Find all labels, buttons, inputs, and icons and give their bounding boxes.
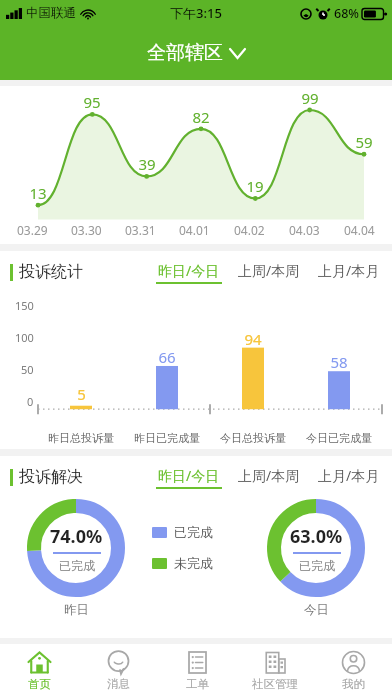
staticText: 全部辖区 (147, 41, 223, 65)
button[interactable]: 社区管理 (236, 644, 314, 696)
staticText: 150 (15, 298, 34, 313)
staticText: 中国联通 (26, 5, 76, 21)
button[interactable]: 昨日/今日 (156, 261, 222, 284)
staticText: 39 (138, 154, 156, 174)
staticText: 下午3:15 (170, 4, 222, 22)
staticText: 今日总投诉量 (220, 431, 286, 445)
staticText: 昨日/今日 (158, 466, 220, 485)
staticText: 95 (83, 92, 101, 112)
staticText: 59 (355, 132, 373, 152)
staticText: 0 (27, 394, 34, 409)
staticText: 今日已完成量 (306, 431, 372, 445)
staticText: 74.0% (50, 524, 103, 549)
staticText: 未完成 (174, 555, 213, 571)
staticText: 已完成 (59, 558, 95, 573)
staticText: 昨日 (64, 602, 89, 618)
staticText: 投诉解决 (19, 467, 83, 487)
staticText: 投诉统计 (19, 262, 83, 282)
staticText: 昨日总投诉量 (48, 431, 114, 445)
staticText: 03.30 (71, 222, 102, 238)
staticText: 上月/本月 (318, 466, 380, 485)
staticText: 已完成 (299, 558, 335, 573)
staticText: 04.04 (344, 222, 375, 238)
staticText: 上周/本周 (238, 466, 300, 485)
button[interactable]: 首页 (0, 644, 79, 696)
staticText: 03.29 (17, 222, 48, 238)
staticText: 94 (244, 329, 262, 349)
staticText: 首页 (28, 677, 51, 691)
button[interactable]: 全部辖区 (0, 26, 392, 80)
staticText: 66 (158, 347, 176, 367)
button[interactable]: 上周/本周 (236, 261, 302, 284)
staticText: 04.02 (234, 222, 265, 238)
staticText: 消息 (107, 677, 130, 691)
staticText: 82 (192, 107, 210, 127)
staticText: 已完成 (174, 524, 213, 540)
staticText: 13 (29, 183, 47, 203)
staticText: 上周/本周 (238, 261, 300, 280)
staticText: 04.01 (179, 222, 210, 238)
staticText: 昨日/今日 (158, 261, 220, 280)
staticText: 工单 (186, 677, 209, 691)
button[interactable]: 上月/本月 (316, 261, 382, 284)
button[interactable]: 上月/本月 (316, 466, 382, 489)
button[interactable]: 我的 (314, 644, 392, 696)
staticText: 上月/本月 (318, 261, 380, 280)
staticText: 5 (77, 384, 86, 404)
staticText: 社区管理 (252, 677, 298, 691)
staticText: 63.0% (290, 524, 343, 549)
button[interactable]: 工单 (158, 644, 236, 696)
staticText: 19 (246, 176, 264, 196)
staticText: 100 (15, 330, 34, 345)
staticText: 04.03 (289, 222, 320, 238)
staticText: 我的 (342, 677, 365, 691)
button[interactable]: 上周/本周 (236, 466, 302, 489)
staticText: 今日 (304, 602, 329, 618)
staticText: 99 (301, 88, 319, 108)
staticText: 50 (21, 362, 34, 377)
staticText: 昨日已完成量 (134, 431, 200, 445)
staticText: 03.31 (125, 222, 156, 238)
button[interactable]: 消息 (79, 644, 158, 696)
staticText: 68% (334, 5, 359, 22)
staticText: 58 (330, 352, 348, 372)
button[interactable]: 昨日/今日 (156, 466, 222, 489)
